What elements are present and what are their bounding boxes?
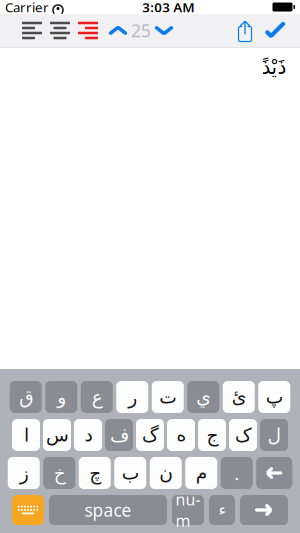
- button[interactable]: ء: [209, 495, 235, 525]
- button[interactable]: ز: [8, 457, 40, 489]
- staticText: ز: [19, 462, 28, 484]
- button[interactable]: س: [43, 419, 71, 451]
- button[interactable]: ک: [229, 419, 257, 451]
- staticText: ا: [23, 424, 28, 446]
- button[interactable]: .: [221, 457, 253, 489]
- staticText: چ: [89, 462, 101, 484]
- staticText: Carrier: [5, 0, 49, 16]
- button[interactable]: د: [74, 419, 102, 451]
- staticText: و: [57, 386, 66, 408]
- staticText: ع: [91, 386, 102, 408]
- button[interactable]: Share: [230, 15, 260, 45]
- staticText: ج: [206, 424, 218, 446]
- button[interactable]: Switch keyboard: [12, 495, 44, 525]
- staticText: ب: [121, 462, 139, 484]
- staticText: ذَيْذً: [261, 56, 286, 78]
- button[interactable]: Next: [152, 15, 176, 45]
- staticText: 3:03 AM: [142, 0, 194, 16]
- button[interactable]: Align right: [74, 15, 102, 45]
- button[interactable]: ا: [12, 419, 40, 451]
- button[interactable]: Return: [240, 495, 288, 525]
- button[interactable]: ن: [150, 457, 182, 489]
- button[interactable]: ه: [167, 419, 195, 451]
- staticText: ء: [218, 501, 226, 519]
- staticText: ر: [128, 386, 137, 408]
- button[interactable]: ب: [114, 457, 146, 489]
- staticText: س: [45, 424, 68, 446]
- button[interactable]: Backspace: [256, 457, 292, 489]
- button[interactable]: num: [172, 495, 204, 525]
- button[interactable]: ئ: [223, 381, 255, 413]
- button[interactable]: و: [45, 381, 77, 413]
- button[interactable]: ق: [10, 381, 42, 413]
- staticText: [49, 0, 52, 16]
- staticText: خ: [53, 462, 65, 484]
- button[interactable]: چ: [79, 457, 111, 489]
- staticText: ي: [196, 386, 211, 408]
- button[interactable]: ر: [116, 381, 148, 413]
- button[interactable]: space: [49, 495, 167, 525]
- button[interactable]: Done: [260, 15, 290, 45]
- button[interactable]: ل: [260, 419, 288, 451]
- staticText: ک: [234, 424, 251, 446]
- staticText: گ: [141, 424, 158, 446]
- staticText: پ: [265, 386, 283, 408]
- staticText: ن: [159, 462, 173, 484]
- staticText: num: [175, 489, 200, 531]
- staticText: .: [234, 461, 239, 485]
- button[interactable]: ي: [187, 381, 219, 413]
- button[interactable]: م: [185, 457, 217, 489]
- staticText: د: [84, 424, 92, 446]
- button[interactable]: Previous: [106, 15, 130, 45]
- button[interactable]: خ: [43, 457, 75, 489]
- staticText: ل: [267, 424, 281, 446]
- button[interactable]: گ: [136, 419, 164, 451]
- button[interactable]: Align left: [18, 15, 46, 45]
- staticText: ق: [19, 386, 33, 408]
- button[interactable]: Align center: [46, 15, 74, 45]
- button[interactable]: ع: [81, 381, 113, 413]
- button[interactable]: پ: [258, 381, 290, 413]
- staticText: م: [195, 462, 207, 484]
- button[interactable]: ج: [198, 419, 226, 451]
- button[interactable]: ت: [152, 381, 184, 413]
- staticText: 25: [131, 19, 151, 42]
- staticText: ت: [159, 386, 177, 408]
- staticText: ه: [176, 424, 186, 446]
- staticText: ئ: [231, 386, 246, 408]
- button[interactable]: ف: [105, 419, 133, 451]
- staticText: ف: [109, 424, 128, 446]
- staticText: space: [84, 498, 131, 521]
